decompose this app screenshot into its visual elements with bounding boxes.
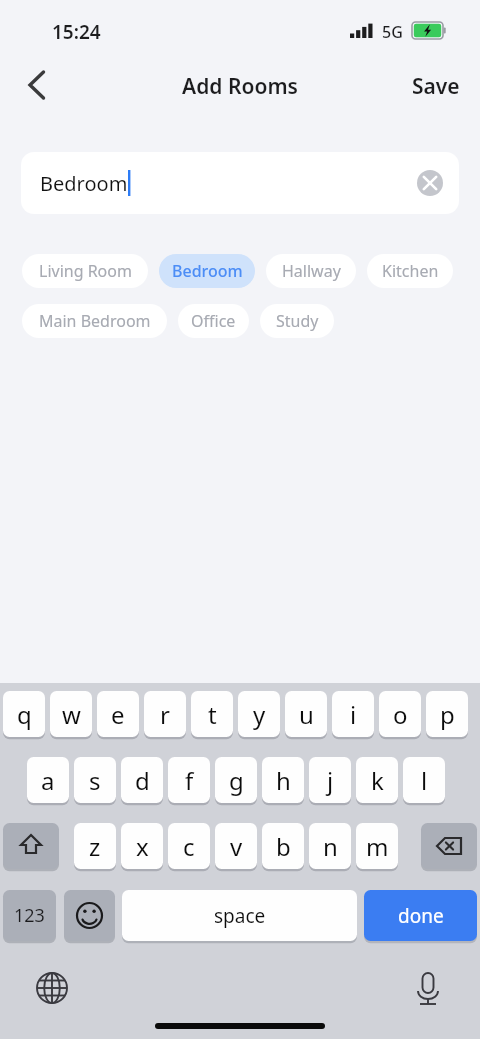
button[interactable]: Change keyboard language	[30, 966, 74, 1010]
button[interactable]: space	[122, 890, 357, 941]
staticText: j	[327, 764, 334, 797]
button[interactable]: g	[215, 757, 257, 803]
button[interactable]: w	[50, 691, 92, 737]
staticText: v	[230, 830, 243, 863]
button[interactable]: x	[121, 823, 163, 869]
button[interactable]: Kitchen	[367, 254, 453, 288]
staticText: k	[371, 764, 384, 797]
staticText: e	[111, 698, 125, 731]
staticText: Hallway	[282, 260, 341, 282]
staticText: done	[398, 903, 444, 929]
staticText: Study	[276, 310, 319, 332]
button[interactable]: b	[262, 823, 304, 869]
staticText: t	[208, 698, 217, 731]
staticText: 5G	[382, 21, 403, 43]
staticText: x	[136, 830, 149, 863]
staticText: 123	[14, 903, 45, 928]
button[interactable]: y	[238, 691, 280, 737]
button[interactable]: a	[27, 757, 69, 803]
button[interactable]: r	[144, 691, 186, 737]
button[interactable]: s	[74, 757, 116, 803]
button[interactable]: Clear text	[415, 168, 445, 198]
button[interactable]: u	[285, 691, 327, 737]
staticText: Kitchen	[382, 260, 439, 282]
staticText: b	[276, 830, 291, 863]
button[interactable]: Office	[178, 304, 249, 338]
button[interactable]: p	[426, 691, 468, 737]
staticText: i	[350, 698, 357, 731]
button[interactable]: z	[74, 823, 116, 869]
button[interactable]: Living Room	[22, 254, 148, 288]
button[interactable]: 123	[3, 890, 56, 941]
staticText: l	[421, 764, 428, 797]
button[interactable]: d	[121, 757, 163, 803]
button[interactable]: v	[215, 823, 257, 869]
button[interactable]: l	[403, 757, 445, 803]
staticText: h	[276, 764, 291, 797]
staticText: f	[185, 764, 194, 797]
button[interactable]: o	[379, 691, 421, 737]
button[interactable]: h	[262, 757, 304, 803]
button[interactable]: f	[168, 757, 210, 803]
staticText: Main Bedroom	[39, 310, 151, 332]
button[interactable]: n	[309, 823, 351, 869]
button[interactable]: Bedroom	[21, 152, 459, 214]
button[interactable]: Voice input	[406, 966, 450, 1010]
staticText: 15:24	[52, 19, 101, 45]
button[interactable]: m	[356, 823, 398, 869]
button[interactable]: j	[309, 757, 351, 803]
staticText: s	[89, 764, 101, 797]
button[interactable]: done	[364, 890, 477, 941]
button[interactable]: Emoji	[64, 890, 115, 941]
staticText: u	[299, 698, 314, 731]
staticText: space	[214, 903, 266, 929]
staticText: c	[183, 830, 195, 863]
staticText: Add Rooms	[0, 72, 480, 101]
staticText: o	[393, 698, 408, 731]
staticText: Living Room	[39, 260, 132, 282]
button[interactable]: e	[97, 691, 139, 737]
button[interactable]: Study	[260, 304, 334, 338]
staticText: r	[160, 698, 170, 731]
button[interactable]: i	[332, 691, 374, 737]
staticText: y	[253, 698, 266, 731]
staticText: q	[17, 698, 32, 731]
button[interactable]: Hallway	[266, 254, 356, 288]
staticText: z	[89, 830, 101, 863]
staticText: m	[366, 830, 389, 863]
button[interactable]: t	[191, 691, 233, 737]
staticText: Save	[412, 72, 460, 101]
staticText: Bedroom	[40, 170, 128, 197]
button[interactable]: Main Bedroom	[22, 304, 167, 338]
button[interactable]: Save	[412, 72, 460, 101]
button[interactable]: c	[168, 823, 210, 869]
button[interactable]: Backspace	[421, 823, 477, 869]
button[interactable]: q	[3, 691, 45, 737]
staticText: n	[323, 830, 338, 863]
staticText: Office	[191, 310, 236, 332]
button[interactable]: Shift	[3, 823, 59, 869]
staticText: w	[62, 698, 81, 731]
staticText: g	[229, 764, 244, 797]
staticText: p	[440, 698, 455, 731]
staticText: d	[135, 764, 150, 797]
staticText: a	[41, 764, 55, 797]
button[interactable]: Bedroom	[159, 254, 255, 288]
staticText: Bedroom	[172, 260, 243, 282]
button[interactable]: k	[356, 757, 398, 803]
button[interactable]: Back	[8, 62, 60, 108]
